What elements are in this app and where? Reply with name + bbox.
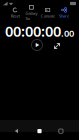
button[interactable]: Galaxy Sa xyxy=(23,5,39,21)
staticText: Share xyxy=(59,13,69,18)
button[interactable]: Share xyxy=(56,7,72,18)
staticText: Reset xyxy=(11,13,20,18)
staticText: Galaxy Sa xyxy=(25,11,37,21)
staticText: Console xyxy=(41,13,55,18)
button[interactable]: Expand xyxy=(53,42,61,50)
staticText: .00 xyxy=(61,27,74,39)
button[interactable]: Reset xyxy=(7,7,23,18)
button[interactable]: Recents xyxy=(56,126,66,136)
button[interactable]: Home xyxy=(34,126,45,136)
button[interactable]: Console xyxy=(39,7,56,18)
button[interactable]: Start xyxy=(31,39,43,51)
button[interactable]: Back xyxy=(12,126,21,136)
staticText: 00:00:00 xyxy=(5,21,61,41)
